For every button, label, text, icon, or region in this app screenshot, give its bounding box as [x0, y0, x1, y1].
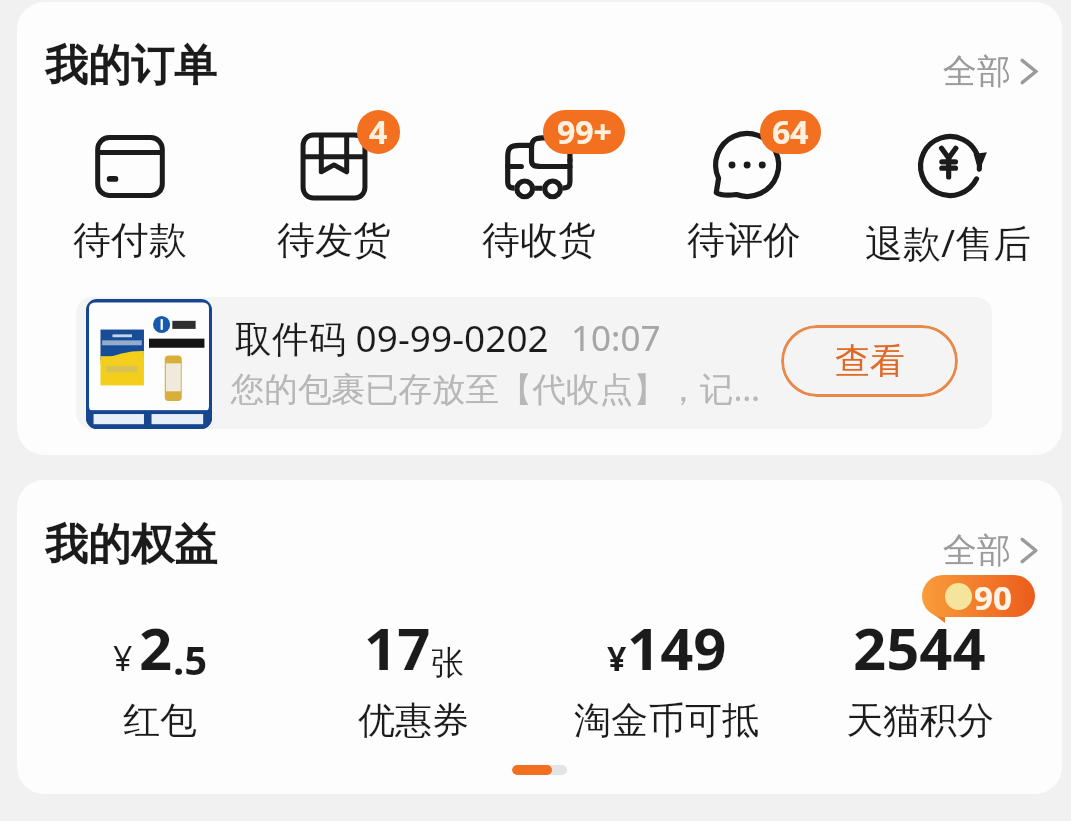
staticText: 退款/售后: [865, 216, 1032, 268]
button[interactable]: 退款/售后: [846, 116, 1051, 268]
staticText: 优惠券: [358, 697, 469, 744]
staticText: 淘金币可抵: [574, 697, 759, 744]
staticText: .5: [173, 632, 208, 686]
button[interactable]: 99+: [436, 116, 641, 264]
staticText: 待评价: [687, 216, 801, 264]
button[interactable]: ¥: [33, 608, 287, 744]
button[interactable]: 待付款: [28, 116, 232, 264]
staticText: 取件码 09-99-0202: [235, 312, 549, 363]
staticText: 64: [772, 110, 809, 154]
staticText: 我的权益: [45, 518, 217, 572]
staticText: 99+: [557, 110, 612, 154]
button[interactable]: 取件码 09-99-0202 您的包裹已存放至【代收点】: [76, 297, 992, 429]
button[interactable]: 17: [287, 608, 540, 744]
staticText: 我的订单: [45, 39, 217, 93]
staticText: 全部: [943, 529, 1011, 572]
button[interactable]: 全部: [939, 525, 1042, 576]
button[interactable]: 2544: [793, 608, 1046, 744]
staticText: 17: [364, 608, 431, 687]
staticText: 天猫积分: [846, 697, 994, 744]
staticText: 待发货: [277, 216, 391, 264]
button[interactable]: 64: [641, 116, 846, 264]
staticText: ¥: [113, 635, 133, 681]
button[interactable]: ¥: [540, 608, 793, 744]
staticText: 10:07: [571, 314, 661, 362]
staticText: 待收货: [482, 216, 596, 264]
button[interactable]: 全部: [939, 46, 1042, 97]
staticText: 待付款: [73, 216, 187, 264]
staticText: 全部: [943, 50, 1011, 93]
staticText: 查看: [835, 339, 905, 383]
staticText: 90: [974, 575, 1012, 617]
button[interactable]: 查看: [781, 325, 958, 397]
staticText: 4: [369, 110, 388, 154]
staticText: 2544: [853, 608, 986, 687]
staticText: 张: [431, 642, 464, 684]
staticText: 2: [139, 608, 173, 687]
button[interactable]: 4: [232, 116, 436, 264]
staticText: 149: [627, 608, 727, 687]
staticText: 红包: [123, 697, 197, 744]
staticText: 您的包裹已存放至【代收点】，记…: [231, 365, 760, 411]
staticText: ¥: [607, 635, 627, 681]
